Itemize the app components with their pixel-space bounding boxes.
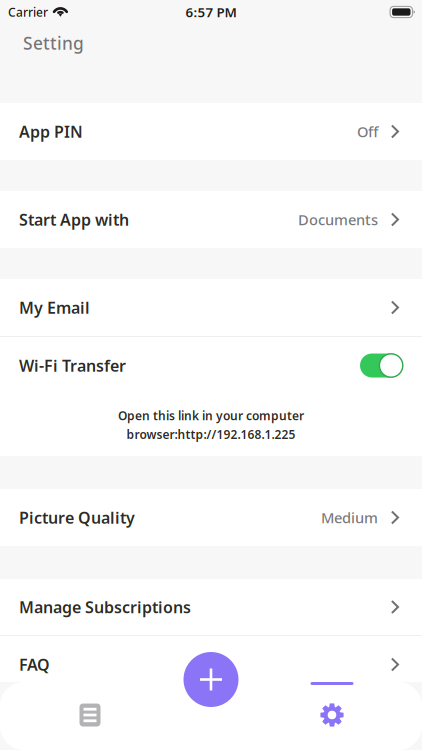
staticText: Setting <box>23 31 84 54</box>
button[interactable]: Documents <box>0 682 180 750</box>
staticText: Start App with <box>19 209 129 230</box>
staticText: Documents <box>298 210 378 229</box>
staticText: Manage Subscriptions <box>19 596 191 618</box>
staticText: Open this link in your computer <box>118 408 304 423</box>
staticText: Picture Quality <box>19 507 135 528</box>
button[interactable]: Add <box>183 652 238 707</box>
button[interactable]: Settings <box>242 682 422 750</box>
staticText: Carrier <box>8 4 48 20</box>
button[interactable]: My Email <box>0 279 422 336</box>
staticText: FAQ <box>19 654 50 675</box>
staticText: Off <box>357 122 378 141</box>
staticText: Medium <box>321 508 378 527</box>
staticText: browser:http://192.168.1.225 <box>126 426 295 442</box>
button[interactable]: App PIN <box>0 103 422 160</box>
button[interactable]: Start App with <box>0 191 422 248</box>
staticText: App PIN <box>19 121 83 142</box>
staticText: Wi-Fi Transfer <box>19 355 126 376</box>
button[interactable]: Manage Subscriptions <box>0 579 422 635</box>
button[interactable]: Wi-Fi Transfer <box>0 337 422 394</box>
button[interactable]: FAQ <box>0 636 422 693</box>
button[interactable]: Picture Quality <box>0 489 422 546</box>
staticText: 6:57 PM <box>185 3 236 21</box>
staticText: My Email <box>19 297 90 318</box>
